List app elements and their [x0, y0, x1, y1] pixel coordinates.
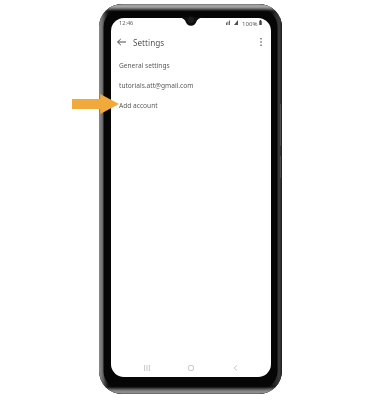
staticText: Add account [119, 101, 158, 110]
button[interactable]: Recent apps [139, 360, 155, 376]
button[interactable]: Back [227, 360, 243, 376]
staticText: General settings [119, 61, 170, 70]
staticText: 12:46 [119, 19, 134, 27]
button[interactable]: Add account [111, 95, 271, 115]
button[interactable]: tutorials.att@gmail.com [111, 75, 271, 95]
staticText: tutorials.att@gmail.com [119, 81, 194, 90]
staticText: 100% [242, 19, 258, 27]
button[interactable]: Home [183, 360, 199, 376]
button[interactable]: More options [253, 34, 269, 50]
button[interactable]: Navigate up [113, 34, 129, 50]
staticText: Settings [133, 37, 165, 48]
button[interactable]: General settings [111, 55, 271, 75]
